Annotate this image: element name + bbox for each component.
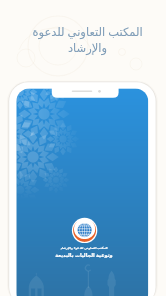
staticText: وتوعية الجاليات بالبديعة	[55, 252, 113, 259]
button[interactable]: Splash screen	[0, 0, 166, 296]
staticText: المكتب التعاوني للدعوة والإرشاد	[32, 24, 143, 55]
staticText: المكتب التعاوني للدعوة والإرشاد	[60, 246, 108, 250]
